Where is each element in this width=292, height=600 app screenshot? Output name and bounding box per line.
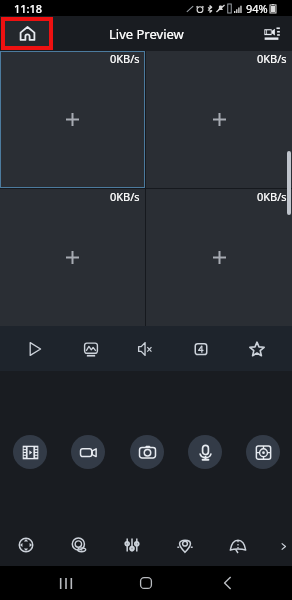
button[interactable]: Home [126, 566, 166, 600]
button[interactable]: Home [5, 21, 49, 46]
staticText: Live Preview [109, 25, 184, 43]
button[interactable]: Camera channel [0, 189, 145, 326]
button[interactable]: Snapshot [130, 435, 164, 469]
button[interactable]: Recents [46, 566, 86, 600]
button[interactable]: Mute [126, 329, 166, 369]
button[interactable]: Favorite [237, 329, 277, 369]
staticText: 0KB/s [257, 189, 287, 204]
button[interactable]: Record [71, 435, 105, 469]
button[interactable]: Wiper [221, 528, 255, 562]
button[interactable]: Talk [188, 435, 222, 469]
button[interactable]: Light [168, 528, 202, 562]
button[interactable]: Record list [13, 435, 47, 469]
button[interactable]: Play [15, 329, 55, 369]
button[interactable]: Split screen [181, 329, 221, 369]
button[interactable]: Zoom [62, 528, 96, 562]
button[interactable]: Camera channel [0, 51, 145, 188]
button[interactable]: Back [207, 566, 247, 600]
button[interactable]: Camera list [252, 16, 292, 51]
staticText: 0KB/s [110, 51, 140, 66]
button[interactable]: Preset [9, 528, 43, 562]
button[interactable]: Image settings [115, 528, 149, 562]
staticText: 0KB/s [257, 51, 287, 66]
staticText: 0KB/s [110, 189, 140, 204]
staticText: 11:18 [14, 1, 43, 16]
button[interactable]: Snapshot [71, 329, 111, 369]
button[interactable]: Camera channel [146, 189, 292, 326]
button[interactable]: Camera channel [146, 51, 292, 188]
button[interactable]: PTZ [246, 435, 280, 469]
staticText: 94% [246, 1, 268, 16]
